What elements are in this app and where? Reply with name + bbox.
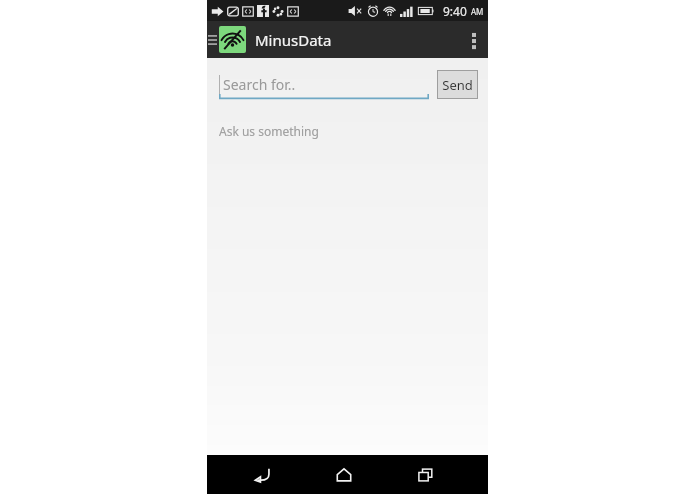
staticText: Search for.. [223,75,296,94]
staticText: 9:40 [443,3,467,19]
button[interactable]: Recent apps [403,455,447,494]
staticText: Ask us something [219,123,319,139]
button[interactable]: MinusData app icon [219,26,246,53]
button[interactable]: Back [241,455,285,494]
button[interactable]: More options [460,21,488,58]
staticText: MinusData [255,30,332,50]
button[interactable]: Send [437,70,478,99]
button[interactable]: Open navigation drawer [207,21,217,58]
button[interactable]: Home [322,455,366,494]
button[interactable]: Search for.. [219,68,429,100]
staticText: Send [442,76,473,94]
staticText: AM [471,6,484,17]
